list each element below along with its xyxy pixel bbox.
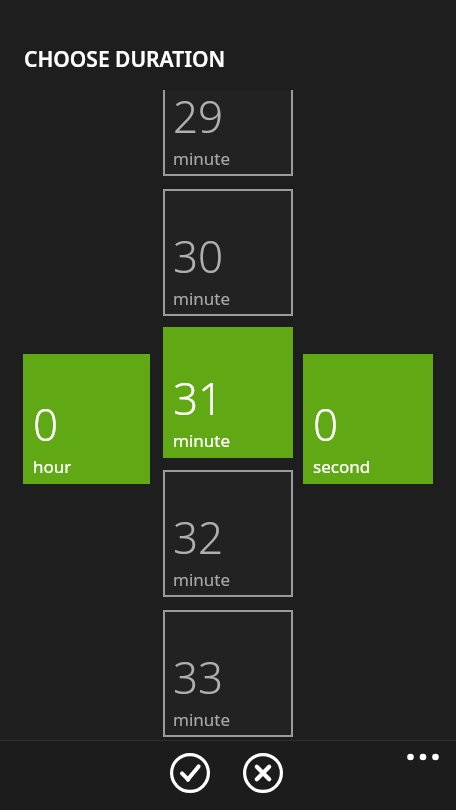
staticText: 32 <box>173 507 224 567</box>
button[interactable]: 0 <box>303 354 433 484</box>
button[interactable]: Accept <box>168 751 212 795</box>
staticText: minute <box>173 287 231 310</box>
button[interactable]: 31 <box>163 327 293 458</box>
staticText: second <box>313 455 371 478</box>
staticText: hour <box>33 455 72 478</box>
button[interactable]: Cancel <box>241 751 285 795</box>
button[interactable]: More options <box>398 740 448 774</box>
staticText: minute <box>173 568 231 591</box>
staticText: minute <box>173 429 231 452</box>
staticText: CHOOSE DURATION <box>24 45 226 74</box>
staticText: 31 <box>173 368 224 428</box>
staticText: 33 <box>173 647 224 707</box>
button[interactable]: 33 <box>163 610 293 737</box>
staticText: minute <box>173 147 231 170</box>
staticText: 0 <box>33 394 59 454</box>
staticText: 29 <box>173 86 224 146</box>
button[interactable]: 30 <box>163 189 293 316</box>
staticText: CHOOSE DURATION <box>24 45 226 74</box>
button[interactable]: 0 <box>23 354 150 484</box>
button[interactable]: 29 <box>163 49 293 176</box>
button[interactable]: 32 <box>163 470 293 597</box>
staticText: 0 <box>313 394 339 454</box>
staticText: 30 <box>173 226 224 286</box>
staticText: minute <box>173 708 231 731</box>
